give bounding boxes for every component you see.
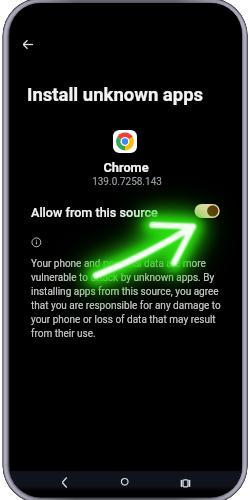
button[interactable]: Back [47,471,83,491]
staticText: Chrome [26,160,226,176]
button[interactable]: Home [107,471,143,491]
staticText: Install unknown apps [27,84,204,106]
staticText: 139.0.7258.143 [27,176,227,190]
staticText: Allow from this source [31,205,158,220]
staticText: Your phone and personal data are more vu… [31,258,227,358]
button[interactable]: Allow from this source [10,198,243,222]
button[interactable]: Back [16,32,41,57]
button[interactable]: Recent apps [167,471,203,491]
